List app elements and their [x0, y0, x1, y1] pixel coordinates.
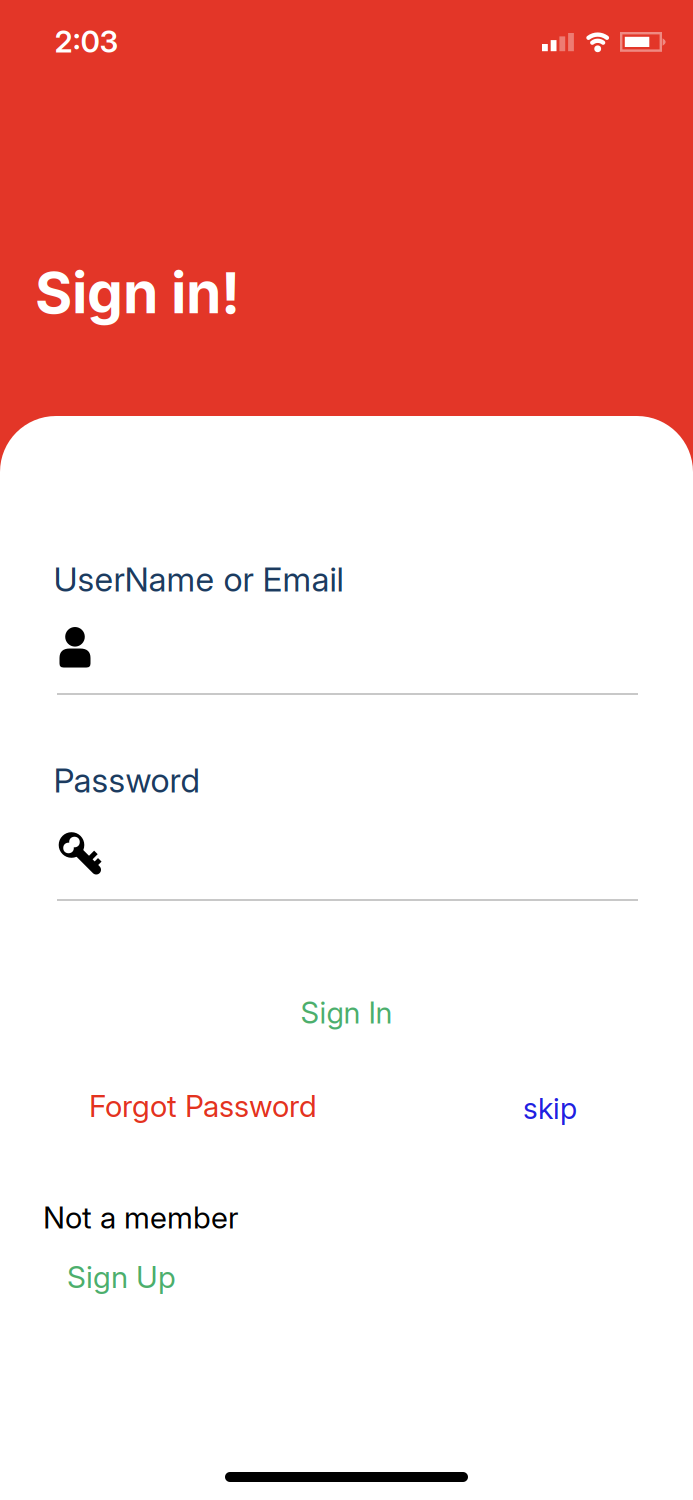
button[interactable]: skip — [523, 1091, 577, 1126]
staticText: Sign Up — [67, 1259, 176, 1295]
staticText: Sign in! — [35, 258, 240, 327]
button[interactable]: Forgot Password — [89, 1088, 317, 1124]
staticText: 2:03 — [54, 23, 118, 60]
button[interactable]: Sign Up — [67, 1259, 176, 1295]
staticText: UserName or Email — [53, 559, 343, 599]
staticText: Password — [53, 760, 200, 800]
button[interactable]: Sign In — [300, 995, 392, 1031]
staticText: Sign In — [300, 995, 392, 1031]
staticText: skip — [523, 1091, 577, 1126]
staticText: Forgot Password — [89, 1088, 317, 1124]
staticText: Not a member — [43, 1199, 239, 1236]
